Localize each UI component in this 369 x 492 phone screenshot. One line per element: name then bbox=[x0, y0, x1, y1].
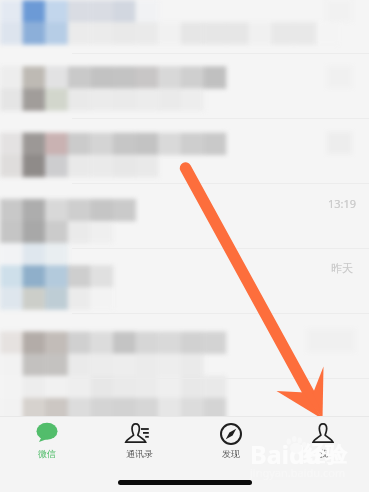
button[interactable]: Discover bbox=[185, 417, 277, 459]
staticText: 经验 bbox=[303, 441, 347, 469]
button[interactable]: Me bbox=[277, 417, 369, 459]
staticText: 13:19 bbox=[328, 196, 357, 211]
button[interactable]: WeChat bbox=[0, 417, 93, 459]
staticText: 通讯录 bbox=[126, 448, 153, 459]
staticText: 发现 bbox=[222, 448, 240, 459]
button[interactable]: Contacts bbox=[93, 417, 185, 459]
staticText: Baidu bbox=[250, 437, 322, 471]
staticText: 昨天 bbox=[331, 261, 353, 275]
staticText: 微信 bbox=[38, 448, 56, 459]
staticText: 我 bbox=[319, 448, 328, 459]
